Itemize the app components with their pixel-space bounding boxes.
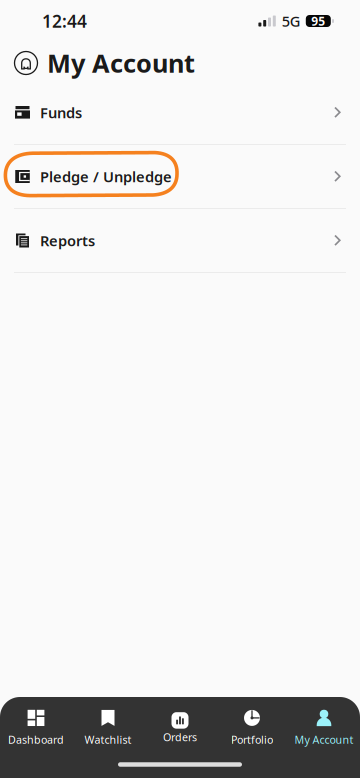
button[interactable]: Funds (0, 81, 360, 144)
button[interactable]: Pledge / Unpledge (0, 145, 360, 208)
staticText: Reports (40, 231, 95, 250)
button[interactable]: Portfolio (216, 697, 288, 751)
staticText: 5G (282, 11, 301, 31)
staticText: 95 (311, 13, 325, 29)
staticText: Dashboard (8, 732, 64, 747)
staticText: My Account (47, 46, 195, 80)
button[interactable]: Orders (144, 697, 216, 751)
staticText: Portfolio (231, 732, 273, 747)
button[interactable]: Dashboard (0, 697, 72, 751)
staticText: My Account (294, 732, 353, 747)
staticText: Funds (40, 103, 82, 122)
staticText: Orders (163, 730, 197, 744)
button[interactable]: My Account (288, 697, 360, 751)
button[interactable]: Reports (0, 209, 360, 272)
staticText: 12:44 (42, 9, 87, 32)
staticText: Pledge / Unpledge (40, 167, 172, 186)
staticText: Watchlist (84, 732, 131, 747)
button[interactable]: Watchlist (72, 697, 144, 751)
